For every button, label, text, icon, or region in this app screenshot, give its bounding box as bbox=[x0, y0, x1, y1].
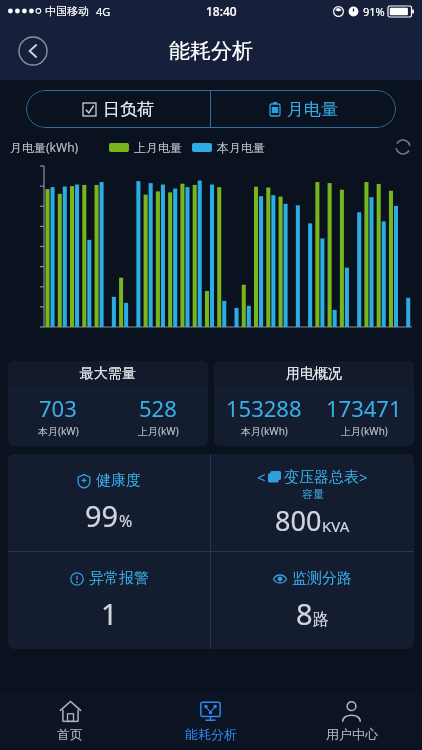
staticText: KVA bbox=[322, 516, 350, 536]
staticText: 上月(kW) bbox=[138, 424, 179, 438]
staticText: 日负荷 bbox=[103, 99, 154, 120]
staticText: 最大需量 bbox=[80, 365, 136, 383]
button[interactable]: 最大需量 bbox=[8, 361, 208, 446]
button[interactable]: 能耗分析 bbox=[140, 692, 281, 750]
staticText: 能耗分析 bbox=[169, 38, 253, 64]
staticText: 18:40 bbox=[206, 3, 237, 19]
staticText: > bbox=[359, 467, 368, 487]
staticText: 路 bbox=[313, 610, 329, 630]
button[interactable]: < bbox=[211, 454, 414, 551]
staticText: 1 bbox=[101, 594, 118, 633]
button[interactable]: Refresh bbox=[394, 138, 412, 156]
button[interactable]: 用户中心 bbox=[281, 692, 422, 750]
button[interactable]: 月电量 bbox=[211, 90, 396, 128]
staticText: 月电量 bbox=[287, 99, 338, 120]
button[interactable]: 健康度 bbox=[8, 454, 210, 551]
staticText: 99 bbox=[85, 496, 119, 535]
staticText: 本月电量 bbox=[217, 140, 265, 155]
staticText: 本月(kWh) bbox=[241, 424, 288, 438]
staticText: 上月(kWh) bbox=[341, 424, 388, 438]
button[interactable]: Back bbox=[18, 36, 48, 66]
staticText: 91% bbox=[363, 4, 385, 19]
staticText: 首页 bbox=[57, 726, 83, 742]
staticText: 监测分路 bbox=[292, 569, 352, 588]
staticText: 容量 bbox=[302, 487, 324, 501]
staticText: 800 bbox=[275, 502, 322, 539]
staticText: 本月(kW) bbox=[38, 424, 79, 438]
staticText: 153288 bbox=[226, 393, 302, 423]
staticText: % bbox=[119, 510, 133, 532]
button[interactable]: 用电概况 bbox=[214, 361, 414, 446]
staticText: 8 bbox=[296, 594, 313, 633]
staticText: < bbox=[257, 467, 266, 487]
staticText: 用户中心 bbox=[326, 726, 378, 742]
button[interactable]: 首页 bbox=[0, 692, 140, 750]
staticText: 4G bbox=[96, 4, 111, 19]
staticText: 用电概况 bbox=[286, 365, 342, 383]
staticText: 异常报警 bbox=[89, 569, 149, 588]
button[interactable]: 异常报警 bbox=[8, 552, 210, 649]
staticText: 健康度 bbox=[96, 471, 141, 490]
button[interactable]: 日负荷 bbox=[26, 90, 210, 128]
staticText: 月电量(kWh) bbox=[10, 139, 79, 155]
staticText: 703 bbox=[39, 393, 77, 423]
staticText: 528 bbox=[139, 393, 177, 423]
button[interactable]: 监测分路 bbox=[211, 552, 414, 649]
staticText: 变压器总表 bbox=[284, 468, 359, 487]
staticText: 上月电量 bbox=[134, 140, 182, 155]
staticText: 能耗分析 bbox=[185, 726, 237, 742]
staticText: 173471 bbox=[326, 393, 402, 423]
staticText: 中国移动 bbox=[45, 4, 89, 18]
